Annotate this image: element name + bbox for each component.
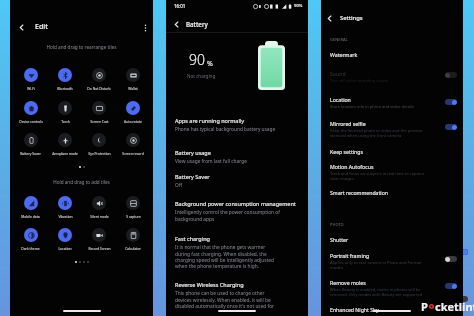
staticText: Applies only to rear camera in Photo and… xyxy=(330,260,422,270)
button[interactable]: Wallet xyxy=(116,68,150,90)
button[interactable]: Bluetooth xyxy=(48,68,82,90)
staticText: P xyxy=(421,299,428,314)
button[interactable]: Battery Saver xyxy=(166,173,308,180)
button[interactable]: Background power consumption management xyxy=(166,200,308,207)
staticText: Battery xyxy=(186,20,208,28)
button[interactable]: Toggle xyxy=(445,124,457,130)
button[interactable]: Shutter xyxy=(321,236,463,243)
staticText: Smart recommendation xyxy=(330,189,389,196)
staticText: Background power consumption management xyxy=(175,200,296,207)
button[interactable]: Wi-Fi xyxy=(13,68,48,90)
button[interactable]: Silent mode xyxy=(82,196,116,218)
button[interactable]: Vibration xyxy=(48,196,82,218)
staticText: Screen record xyxy=(122,151,144,155)
button[interactable]: Keep settings xyxy=(321,148,463,155)
button[interactable]: Screen record xyxy=(116,133,150,155)
staticText: Watermark xyxy=(330,51,358,58)
staticText: % xyxy=(207,59,213,69)
button[interactable]: Device controls xyxy=(13,101,48,123)
staticText: Not charging xyxy=(187,73,216,79)
staticText: Do Not Disturb xyxy=(87,86,111,90)
staticText: Record Screen xyxy=(88,246,111,250)
button[interactable]: Calculator xyxy=(116,228,150,250)
staticText: Settings xyxy=(340,14,363,22)
staticText: Vibration xyxy=(58,214,73,218)
button[interactable]: Torch xyxy=(48,101,82,123)
staticText: Portrait framing xyxy=(330,252,370,259)
staticText: 16:01 xyxy=(174,3,186,9)
button[interactable]: Battery Saver xyxy=(13,133,48,155)
staticText: Shutter xyxy=(330,236,349,243)
button[interactable]: Switch on xyxy=(456,249,468,255)
staticText: cketlint xyxy=(435,299,474,314)
button[interactable]: Auto-rotate xyxy=(116,101,150,123)
button[interactable]: Screen Cast xyxy=(82,101,116,123)
staticText: View usage from last full charge xyxy=(175,158,247,165)
staticText: Dark theme xyxy=(21,246,40,250)
button[interactable]: Record Screen xyxy=(82,228,116,250)
button[interactable]: Smart recommendation xyxy=(321,189,463,196)
button[interactable]: Apps are running normally xyxy=(166,117,308,124)
button[interactable]: Location xyxy=(48,228,82,250)
staticText: Intelligently control the power consumpt… xyxy=(175,209,280,222)
staticText: Wallet xyxy=(128,86,138,90)
button[interactable]: Enhanced Night Sky xyxy=(321,306,463,313)
button[interactable]: Mobile data xyxy=(13,196,48,218)
staticText: Battery Saver xyxy=(175,173,210,180)
staticText: Keep the finished photo or video and the… xyxy=(330,128,423,138)
staticText: 90 xyxy=(189,50,205,69)
button[interactable]: Back xyxy=(323,12,335,24)
staticText: Motion Autofocus xyxy=(330,163,374,170)
staticText: Keep settings xyxy=(330,148,363,155)
staticText: Fast charging xyxy=(175,235,210,242)
staticText: Location xyxy=(58,246,72,250)
staticText: Battery Saver xyxy=(20,151,41,155)
staticText: Wi-Fi xyxy=(27,86,35,90)
staticText: Hold and drag to rearrange tiles xyxy=(10,44,153,50)
staticText: Silent mode xyxy=(90,214,109,218)
staticText: Sound xyxy=(330,70,346,77)
button[interactable]: Do Not Disturb xyxy=(82,68,116,90)
staticText: Store location info in photo and video d… xyxy=(330,104,414,109)
staticText: 90% xyxy=(294,3,303,9)
button[interactable]: Toggle xyxy=(445,283,457,289)
staticText: Hold and drag to add tiles xyxy=(10,179,153,185)
button[interactable]: Dark theme xyxy=(13,228,48,250)
staticText: Battery usage xyxy=(175,149,211,156)
staticText: Off xyxy=(175,182,183,189)
button[interactable]: Back xyxy=(170,18,182,30)
button[interactable]: Toggle xyxy=(445,72,457,78)
button[interactable]: Sound xyxy=(321,70,463,77)
staticText: S capture xyxy=(126,214,141,218)
staticText: Bluetooth xyxy=(57,86,73,90)
button[interactable]: Eye Protection xyxy=(82,133,116,155)
button[interactable]: Remove moles xyxy=(321,279,463,286)
button[interactable]: Toggle xyxy=(445,256,457,262)
button[interactable]: Location xyxy=(321,96,463,103)
staticText: Edit xyxy=(35,22,48,32)
button[interactable]: Motion Autofocus xyxy=(321,163,463,170)
button[interactable]: Toggle xyxy=(445,99,457,105)
button[interactable]: Portrait framing xyxy=(321,252,463,259)
button[interactable]: Fast charging xyxy=(166,235,308,242)
button[interactable]: Reverse Wireless Charging xyxy=(166,281,308,288)
staticText: Apps are running normally xyxy=(175,117,245,124)
button[interactable]: Back xyxy=(14,20,28,34)
button[interactable]: S capture xyxy=(116,196,150,218)
button[interactable]: More options xyxy=(138,20,152,34)
staticText: Reverse Wireless Charging xyxy=(175,281,244,288)
staticText: Mobile data xyxy=(21,214,40,218)
button[interactable]: Watermark xyxy=(321,51,463,58)
staticText: Phone has typical background battery usa… xyxy=(175,126,276,133)
staticText: Calculator xyxy=(125,246,141,250)
staticText: Turn off video recording sound xyxy=(330,78,389,83)
staticText: Torch xyxy=(61,119,70,123)
button[interactable]: Mirrored selfie xyxy=(321,120,463,127)
staticText: Remove moles xyxy=(330,279,366,286)
staticText: GENERAL xyxy=(330,37,348,42)
button[interactable]: Switch off xyxy=(456,296,468,302)
staticText: Aeroplane mode xyxy=(52,151,78,155)
staticText: Auto-rotate xyxy=(124,119,142,123)
button[interactable]: Battery usage xyxy=(166,149,308,156)
button[interactable]: Aeroplane mode xyxy=(48,133,82,155)
